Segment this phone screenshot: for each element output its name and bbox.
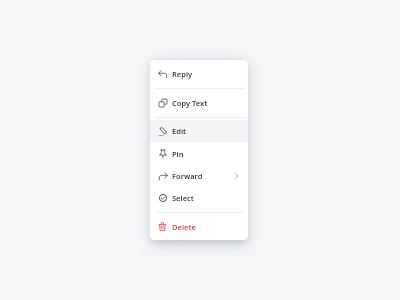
button[interactable]: Reply [150,63,248,85]
staticText: Forward [172,171,203,181]
button[interactable]: Delete [150,216,248,238]
staticText: Pin [172,149,184,159]
staticText: Delete [172,222,196,232]
button[interactable]: Copy Text [150,92,248,114]
button[interactable]: Edit [150,120,248,142]
staticText: Select [172,193,194,203]
staticText: Copy Text [172,98,208,108]
button[interactable]: Forward [150,165,248,187]
staticText: Reply [172,69,193,79]
button[interactable]: Select [150,187,248,209]
button[interactable]: Pin [150,143,248,165]
staticText: Edit [172,126,187,136]
